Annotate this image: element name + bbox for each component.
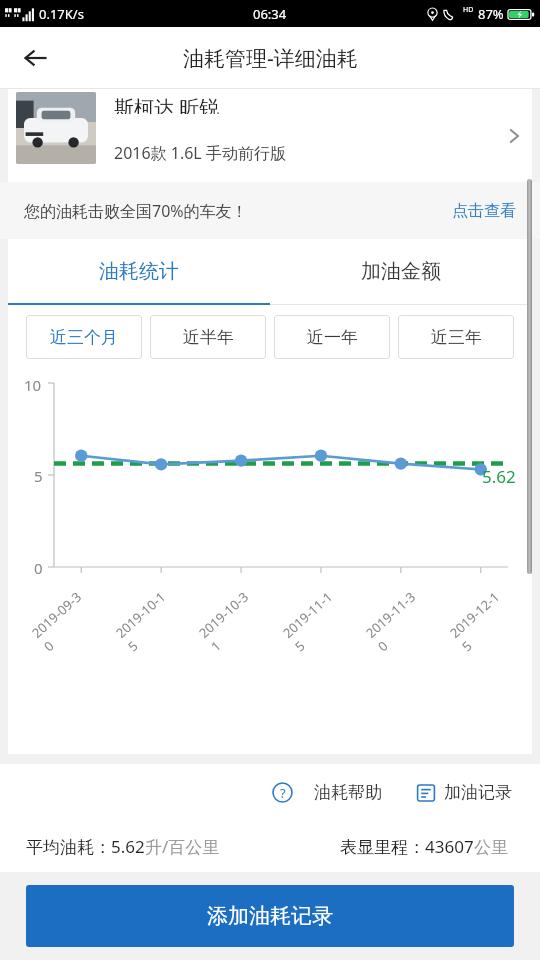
button[interactable]: 加油金额 — [270, 239, 532, 303]
staticText: 油耗统计 — [99, 259, 179, 284]
staticText: 2019-10-31 — [195, 587, 265, 655]
staticText: 升/百公里 — [145, 835, 220, 858]
staticText: 近三个月 — [50, 327, 118, 348]
staticText: 2019-10-15 — [112, 587, 182, 655]
button[interactable]: 添加油耗记录 — [26, 885, 514, 947]
button[interactable]: 加油记录 — [412, 782, 516, 803]
staticText: 加油记录 — [444, 782, 512, 803]
button[interactable]: 近三年 — [398, 315, 514, 359]
staticText: 点击查看 — [452, 201, 516, 221]
button[interactable]: 近半年 — [150, 315, 266, 359]
staticText: 06:34 — [253, 5, 287, 23]
button[interactable]: 点击查看 — [452, 201, 516, 221]
staticText: 0.17K/s — [39, 5, 84, 23]
staticText: 5 — [34, 466, 43, 486]
staticText: 2019-12-15 — [446, 587, 516, 655]
staticText: 10 — [24, 375, 42, 395]
button[interactable]: 斯柯达 昕锐 — [8, 89, 532, 182]
staticText: 2019-11-15 — [279, 587, 349, 655]
button[interactable]: Back — [14, 36, 58, 80]
staticText: 公里 — [474, 837, 508, 858]
button[interactable]: 油耗统计 — [8, 239, 270, 303]
staticText: 斯柯达 昕锐 — [114, 94, 220, 114]
staticText: 近一年 — [307, 327, 358, 348]
staticText: 油耗管理-详细油耗 — [183, 44, 358, 73]
staticText: 油耗帮助 — [314, 782, 382, 803]
staticText: 87% — [478, 5, 504, 23]
staticText: 添加油耗记录 — [207, 903, 333, 929]
button[interactable]: ? — [268, 782, 386, 803]
staticText: ? — [280, 784, 286, 802]
staticText: 近三年 — [431, 327, 482, 348]
staticText: 2019-11-30 — [362, 587, 432, 655]
staticText: 0 — [34, 558, 43, 578]
staticText: 平均油耗：5.62 — [26, 835, 145, 858]
staticText: 2016款 1.6L 手动前行版 — [114, 142, 286, 164]
button[interactable]: 近三个月 — [26, 315, 142, 359]
staticText: 5.62 — [482, 465, 516, 488]
staticText: 近半年 — [183, 327, 234, 348]
staticText: HD — [463, 5, 474, 15]
staticText: 表显里程：43607 — [340, 835, 474, 858]
staticText: 您的油耗击败全国70%的车友！ — [24, 200, 248, 222]
button[interactable]: 近一年 — [274, 315, 390, 359]
staticText: 2019-09-30 — [28, 587, 98, 655]
staticText: 加油金额 — [361, 259, 441, 284]
